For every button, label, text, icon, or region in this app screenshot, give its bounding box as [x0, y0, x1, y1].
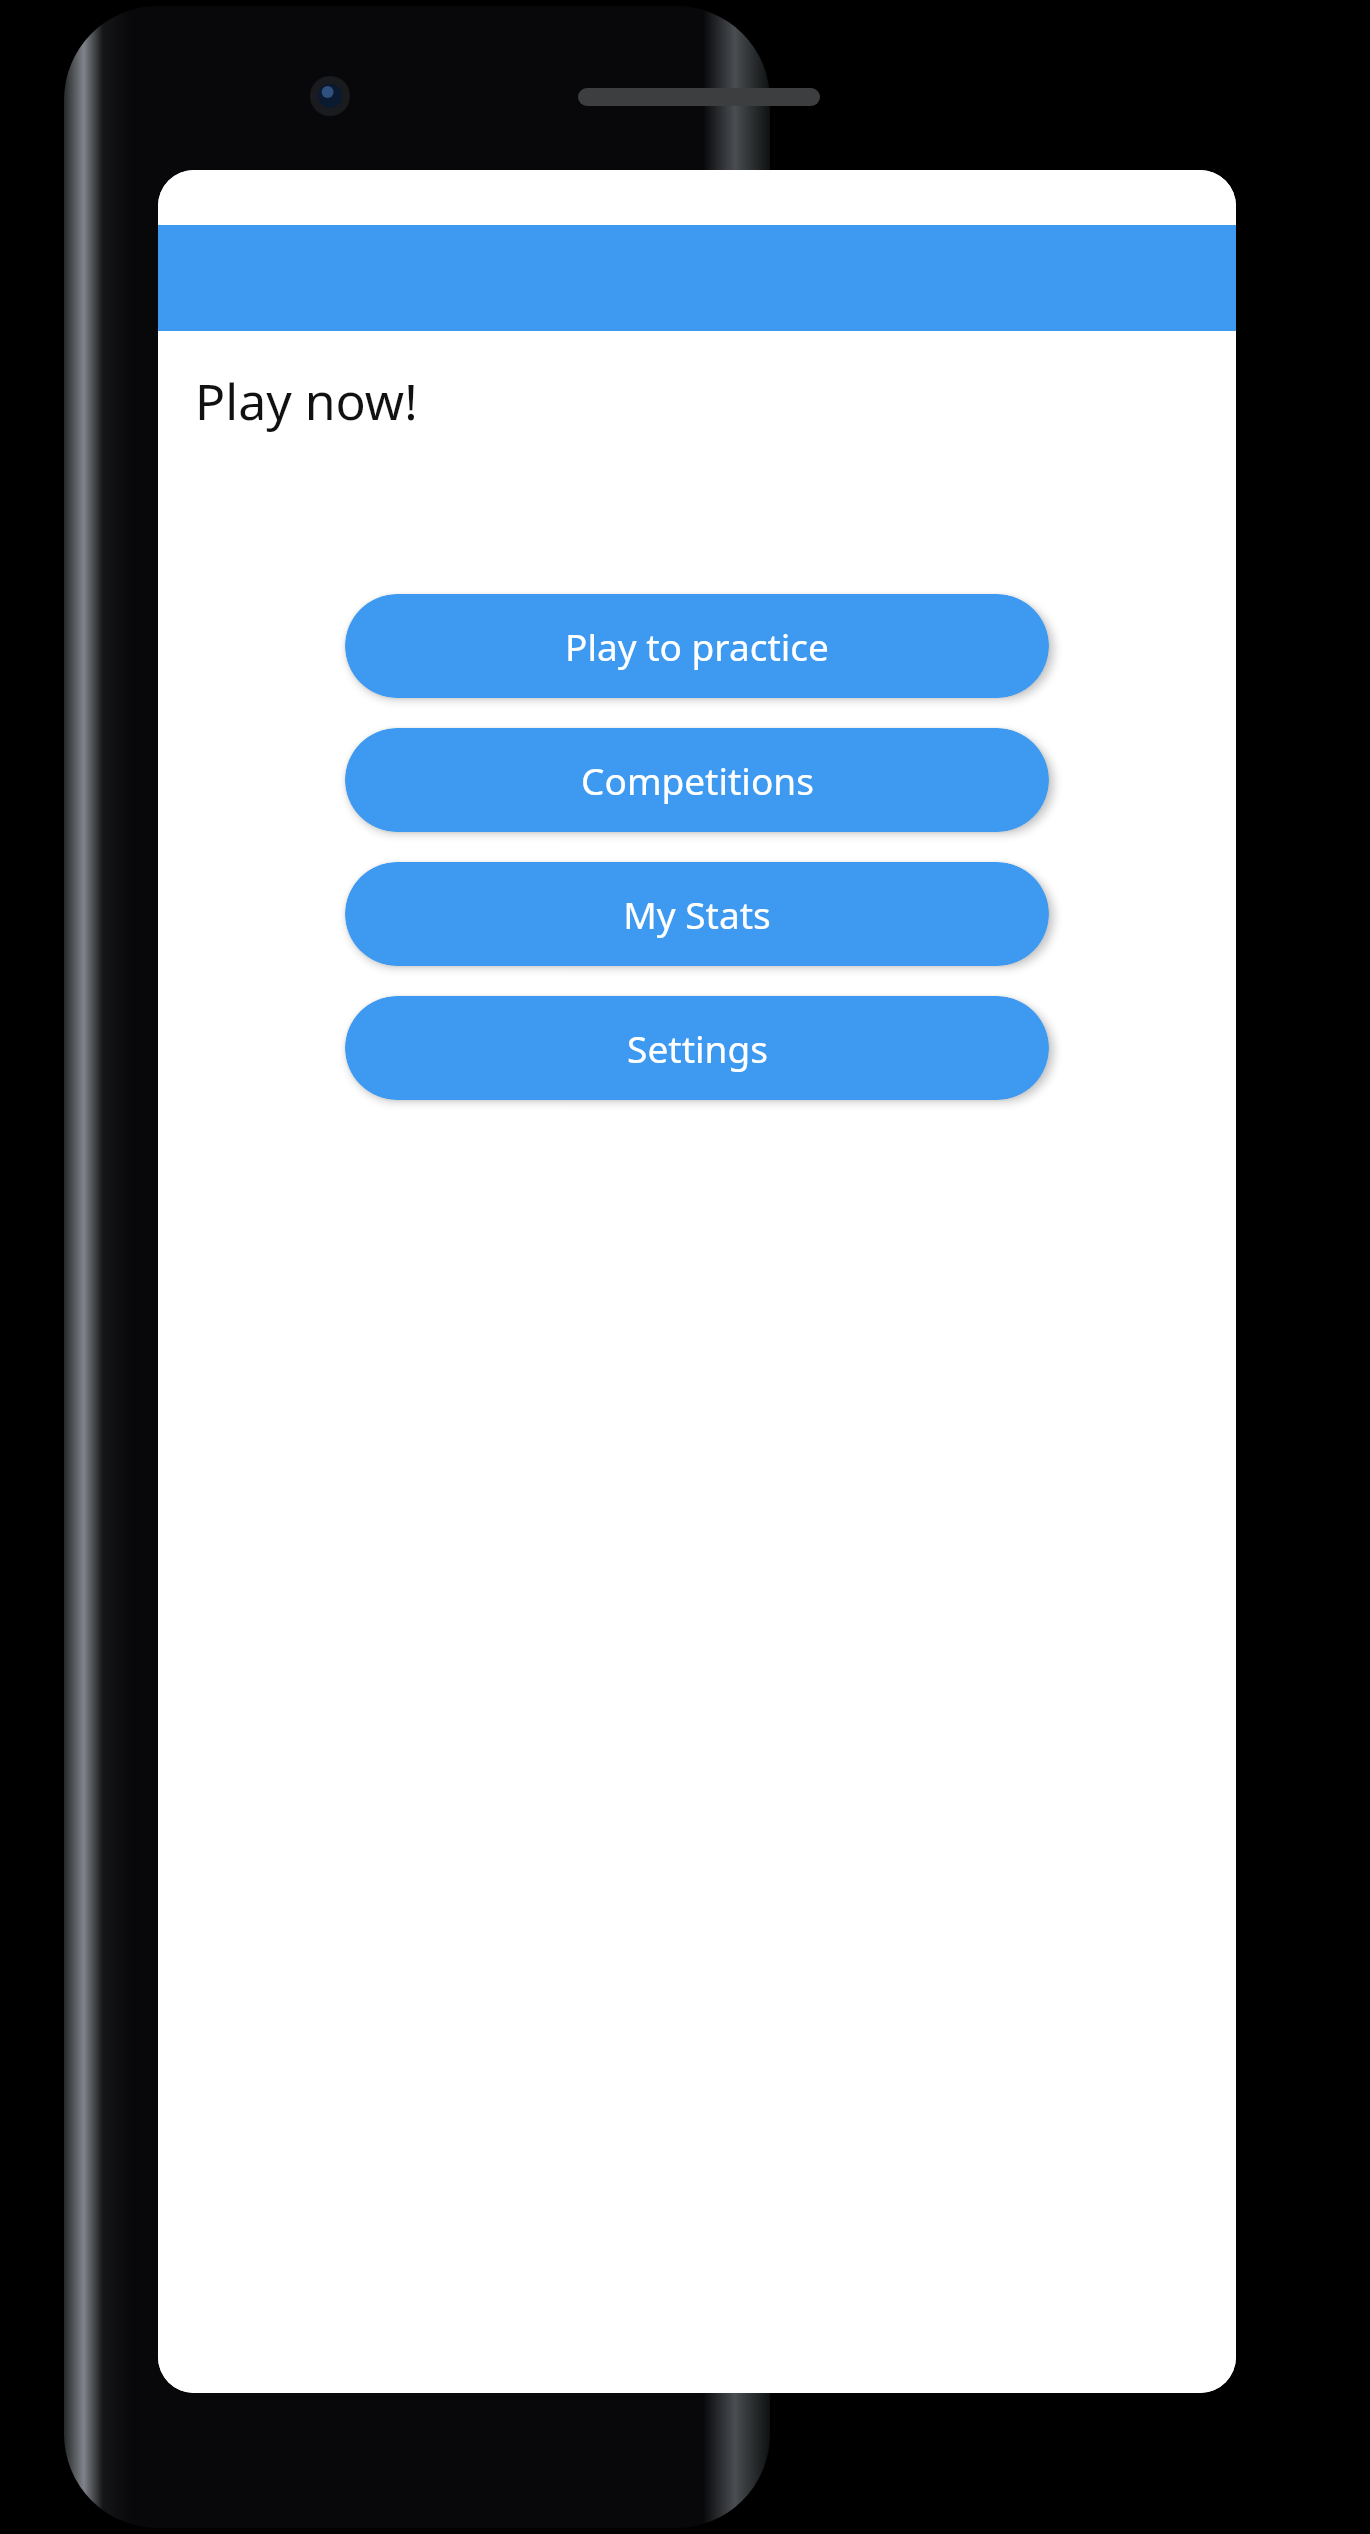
staticText: Competitions [581, 755, 814, 805]
staticText: My Stats [623, 889, 771, 939]
button[interactable]: Settings [345, 996, 1049, 1100]
button[interactable]: Competitions [345, 728, 1049, 832]
button[interactable]: My Stats [345, 862, 1049, 966]
button[interactable]: Play to practice [345, 594, 1049, 698]
staticText: Settings [627, 1023, 768, 1073]
staticText: Play now! [195, 367, 418, 435]
staticText: Play to practice [565, 621, 829, 671]
